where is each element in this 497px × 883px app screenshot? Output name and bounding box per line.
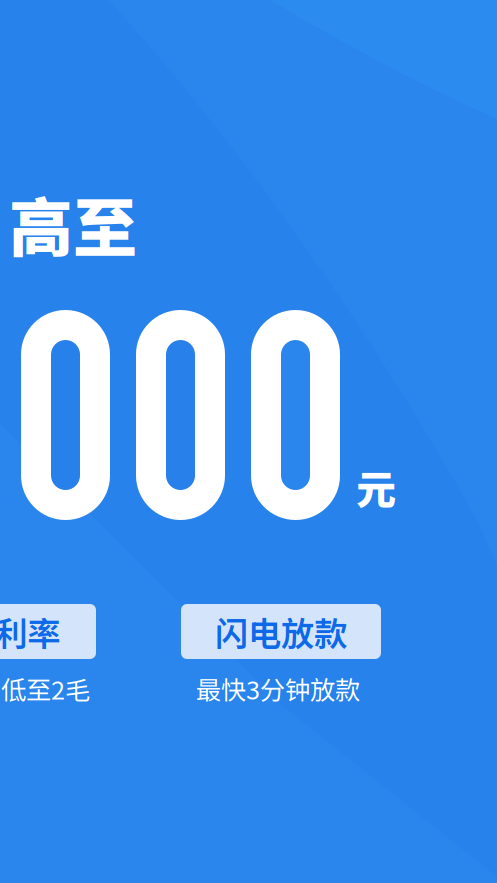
button[interactable]: 低利率 bbox=[0, 604, 96, 659]
staticText: 高至 bbox=[9, 177, 137, 270]
staticText: 闪电放款 bbox=[215, 607, 347, 656]
button[interactable]: 闪电放款 bbox=[181, 604, 381, 659]
staticText: 低至2毛 bbox=[1, 670, 90, 707]
staticText: 元 bbox=[356, 458, 396, 516]
staticText: 最快3分钟放款 bbox=[196, 670, 360, 707]
staticText: 低利率 bbox=[0, 607, 60, 656]
